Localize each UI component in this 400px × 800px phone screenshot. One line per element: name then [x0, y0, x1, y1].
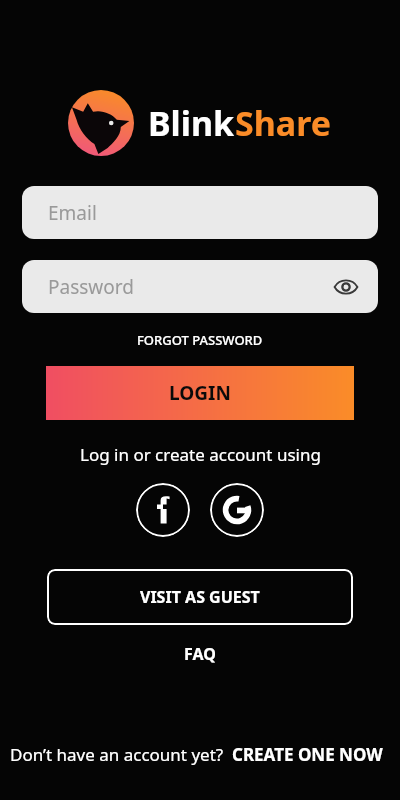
button[interactable]: Sign in with Google [210, 483, 264, 537]
button[interactable]: Password [22, 260, 378, 313]
staticText: Blink [148, 100, 235, 146]
staticText: Password [48, 274, 134, 300]
button[interactable]: CREATE ONE NOW [232, 743, 383, 766]
button[interactable]: Sign in with Facebook [136, 483, 190, 537]
staticText: Share [235, 100, 332, 146]
staticText: Don’t have an account yet? [10, 743, 224, 766]
button[interactable]: FAQ [174, 641, 226, 667]
staticText: FORGOT PASSWORD [137, 331, 263, 349]
staticText: CREATE ONE NOW [232, 743, 383, 766]
staticText: Log in or create account using [80, 443, 321, 466]
staticText: Email [48, 200, 97, 226]
staticText: VISIT AS GUEST [140, 586, 260, 608]
button[interactable]: VISIT AS GUEST [47, 569, 353, 625]
staticText: LOGIN [169, 380, 231, 406]
staticText: FAQ [184, 643, 216, 665]
button[interactable]: Show password [332, 273, 360, 301]
button[interactable]: LOGIN [46, 366, 354, 420]
button[interactable]: Email [22, 186, 378, 239]
button[interactable]: FORGOT PASSWORD [129, 329, 271, 351]
